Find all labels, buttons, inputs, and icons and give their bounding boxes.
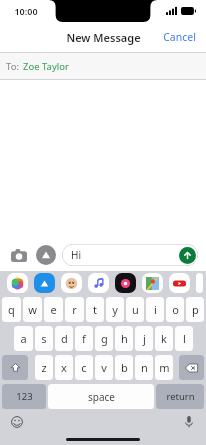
staticText: v — [101, 360, 107, 375]
button[interactable]: Cancel — [153, 25, 206, 49]
staticText: New Message — [66, 30, 141, 45]
button[interactable]: To: — [0, 53, 206, 79]
staticText: w — [28, 302, 37, 317]
staticText: Zoe Taylor — [23, 60, 69, 73]
staticText: d — [61, 331, 68, 346]
button[interactable]: r — [65, 297, 84, 322]
staticText: j — [143, 331, 146, 346]
button[interactable]: x — [55, 355, 73, 380]
staticText: r — [72, 302, 77, 317]
staticText: z — [41, 360, 47, 375]
button[interactable]: Shift — [2, 355, 28, 380]
button[interactable]: Hi — [62, 244, 198, 266]
button[interactable]: b — [115, 355, 133, 380]
button[interactable]: space — [48, 384, 154, 409]
staticText: u — [132, 302, 139, 317]
button[interactable]: App — [34, 273, 55, 293]
staticText: Cancel — [163, 30, 196, 44]
staticText: c — [81, 360, 87, 375]
button[interactable]: z — [35, 355, 53, 380]
button[interactable]: Send — [179, 247, 196, 264]
button[interactable]: s — [35, 326, 53, 351]
button[interactable]: v — [95, 355, 113, 380]
staticText: return — [166, 390, 195, 403]
button[interactable]: h — [115, 326, 133, 351]
staticText: Hi — [71, 248, 81, 262]
staticText: 123 — [16, 390, 33, 403]
staticText: 10:00 — [14, 5, 38, 17]
staticText: To: — [6, 60, 19, 73]
staticText: o — [172, 302, 179, 317]
staticText: t — [93, 302, 97, 317]
staticText: x — [61, 360, 67, 375]
button[interactable]: k — [155, 326, 173, 351]
staticText: e — [50, 302, 57, 317]
button[interactable]: j — [135, 326, 153, 351]
button[interactable]: Camera — [8, 244, 30, 266]
button[interactable]: q — [2, 297, 21, 322]
staticText: n — [141, 360, 148, 375]
staticText: k — [161, 331, 167, 346]
staticText: g — [101, 331, 108, 346]
staticText: space — [88, 390, 115, 404]
button[interactable]: c — [75, 355, 93, 380]
button[interactable]: App — [142, 273, 163, 293]
button[interactable]: e — [44, 297, 63, 322]
button[interactable]: App — [196, 273, 203, 293]
button[interactable]: i — [146, 297, 164, 322]
button[interactable]: App Store — [36, 245, 56, 265]
staticText: l — [183, 331, 186, 346]
button[interactable]: return — [156, 384, 204, 409]
staticText: f — [82, 331, 86, 346]
button[interactable]: n — [135, 355, 153, 380]
staticText: m — [159, 360, 170, 375]
button[interactable]: Backspace — [179, 355, 204, 380]
staticText: a — [20, 331, 27, 346]
button[interactable]: w — [23, 297, 42, 322]
button[interactable]: App — [7, 273, 28, 293]
staticText: h — [121, 331, 128, 346]
button[interactable]: App — [61, 273, 82, 293]
button[interactable]: p — [186, 297, 204, 322]
button[interactable]: t — [86, 297, 104, 322]
button[interactable]: Emoji — [8, 413, 26, 431]
staticText: s — [41, 331, 47, 346]
button[interactable]: App — [88, 273, 109, 293]
staticText: q — [8, 302, 15, 317]
button[interactable]: 123 — [2, 384, 46, 409]
button[interactable]: Dictate — [180, 413, 198, 431]
staticText: i — [154, 302, 157, 317]
staticText: b — [121, 360, 128, 375]
button[interactable]: f — [75, 326, 93, 351]
button[interactable]: y — [106, 297, 124, 322]
button[interactable]: d — [55, 326, 73, 351]
button[interactable]: u — [126, 297, 144, 322]
button[interactable]: App — [169, 273, 190, 293]
staticText: y — [112, 302, 118, 317]
button[interactable]: g — [95, 326, 113, 351]
button[interactable]: o — [166, 297, 184, 322]
button[interactable]: l — [175, 326, 193, 351]
staticText: p — [192, 302, 199, 317]
button[interactable]: a — [14, 326, 33, 351]
button[interactable]: App — [115, 273, 136, 293]
button[interactable]: m — [155, 355, 173, 380]
